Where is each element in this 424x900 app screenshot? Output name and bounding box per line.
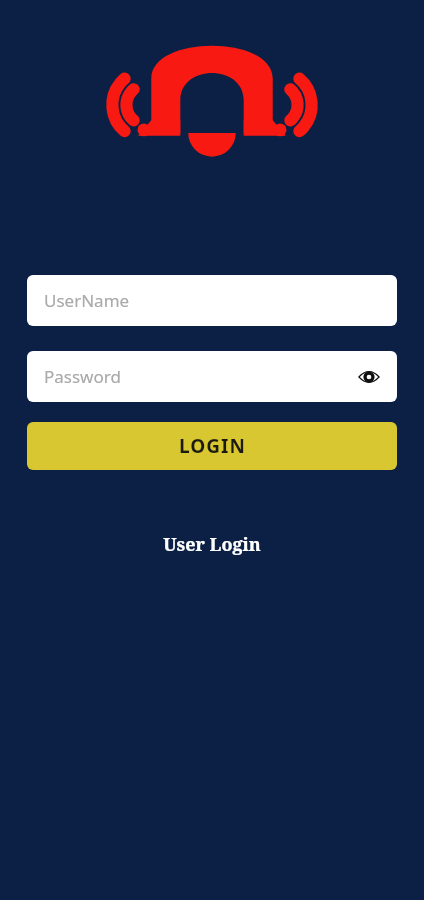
- staticText: LOGIN: [179, 433, 246, 459]
- button[interactable]: UserName: [27, 275, 397, 326]
- staticText: UserName: [44, 289, 130, 312]
- button[interactable]: Password: [27, 351, 397, 402]
- button[interactable]: LOGIN: [27, 422, 397, 470]
- staticText: User Login: [163, 532, 261, 557]
- button[interactable]: Show password: [353, 361, 385, 393]
- staticText: Password: [44, 365, 121, 388]
